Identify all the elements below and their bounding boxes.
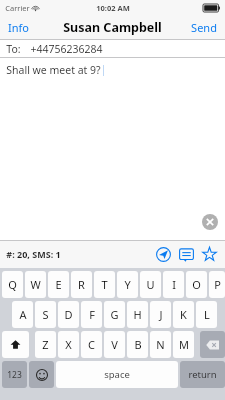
- button[interactable]: E: [48, 271, 69, 298]
- staticText: K: [180, 307, 187, 322]
- button[interactable]: Shall we meet at 9?: [0, 58, 225, 240]
- button[interactable]: I: [163, 271, 184, 298]
- button[interactable]: U: [140, 271, 161, 298]
- button[interactable]: G: [104, 301, 125, 328]
- staticText: return: [188, 368, 217, 381]
- staticText: M: [179, 337, 189, 352]
- button[interactable]: Insert location: [153, 244, 173, 264]
- staticText: 123: [7, 369, 22, 381]
- staticText: #: 20, SMS: 1: [6, 248, 61, 260]
- staticText: Send: [191, 20, 217, 35]
- button[interactable]: Q: [2, 271, 23, 298]
- staticText: E: [55, 277, 62, 292]
- staticText: D: [64, 307, 73, 322]
- button[interactable]: T: [94, 271, 115, 298]
- staticText: P: [214, 277, 221, 292]
- button[interactable]: N: [150, 331, 171, 358]
- staticText: 10:02 AM: [96, 3, 130, 13]
- staticText: T: [101, 277, 108, 292]
- button[interactable]: K: [173, 301, 194, 328]
- staticText: I: [172, 277, 176, 292]
- button[interactable]: L: [196, 301, 217, 328]
- staticText: Susan Campbell: [63, 19, 162, 36]
- button[interactable]: D: [58, 301, 79, 328]
- staticText: Shall we meet at 9?: [6, 63, 101, 77]
- button[interactable]: W: [25, 271, 46, 298]
- staticText: W: [30, 277, 41, 292]
- button[interactable]: R: [71, 271, 92, 298]
- button[interactable]: X: [58, 331, 79, 358]
- staticText: Y: [124, 277, 131, 292]
- staticText: space: [104, 368, 130, 381]
- staticText: C: [88, 337, 95, 352]
- staticText: F: [89, 307, 95, 322]
- button[interactable]: F: [81, 301, 102, 328]
- button[interactable]: Shift: [2, 331, 29, 358]
- button[interactable]: Templates: [176, 244, 196, 264]
- button[interactable]: Backspace: [200, 331, 225, 358]
- button[interactable]: S: [35, 301, 56, 328]
- staticText: A: [19, 307, 27, 322]
- staticText: To:: [6, 42, 21, 56]
- button[interactable]: Clear message: [202, 214, 218, 230]
- button[interactable]: Emoji: [29, 361, 54, 388]
- button[interactable]: A: [12, 301, 33, 328]
- button[interactable]: C: [81, 331, 102, 358]
- button[interactable]: V: [104, 331, 125, 358]
- staticText: L: [204, 307, 210, 322]
- staticText: Z: [42, 337, 49, 352]
- staticText: S: [42, 307, 49, 322]
- staticText: U: [146, 277, 155, 292]
- button[interactable]: H: [127, 301, 148, 328]
- button[interactable]: Y: [117, 271, 138, 298]
- staticText: Info: [8, 20, 29, 35]
- staticText: +44756236284: [30, 42, 103, 56]
- button[interactable]: Favorite: [199, 244, 219, 264]
- button[interactable]: To:: [0, 40, 225, 58]
- button[interactable]: return: [180, 361, 225, 388]
- button[interactable]: 123: [2, 361, 27, 388]
- staticText: N: [156, 337, 165, 352]
- staticText: Q: [8, 277, 17, 292]
- button[interactable]: P: [209, 271, 225, 298]
- button[interactable]: Z: [35, 331, 56, 358]
- staticText: B: [134, 337, 142, 352]
- button[interactable]: M: [173, 331, 194, 358]
- button[interactable]: J: [150, 301, 171, 328]
- staticText: H: [133, 307, 142, 322]
- button[interactable]: Info: [0, 16, 37, 39]
- staticText: V: [111, 337, 118, 352]
- staticText: X: [65, 337, 72, 352]
- button[interactable]: B: [127, 331, 148, 358]
- staticText: Carrier: [5, 3, 30, 13]
- button[interactable]: O: [186, 271, 207, 298]
- button[interactable]: space: [56, 361, 178, 388]
- staticText: J: [159, 307, 163, 322]
- staticText: G: [110, 307, 119, 322]
- staticText: R: [78, 277, 85, 292]
- button[interactable]: Send: [183, 16, 225, 39]
- staticText: O: [192, 277, 201, 292]
